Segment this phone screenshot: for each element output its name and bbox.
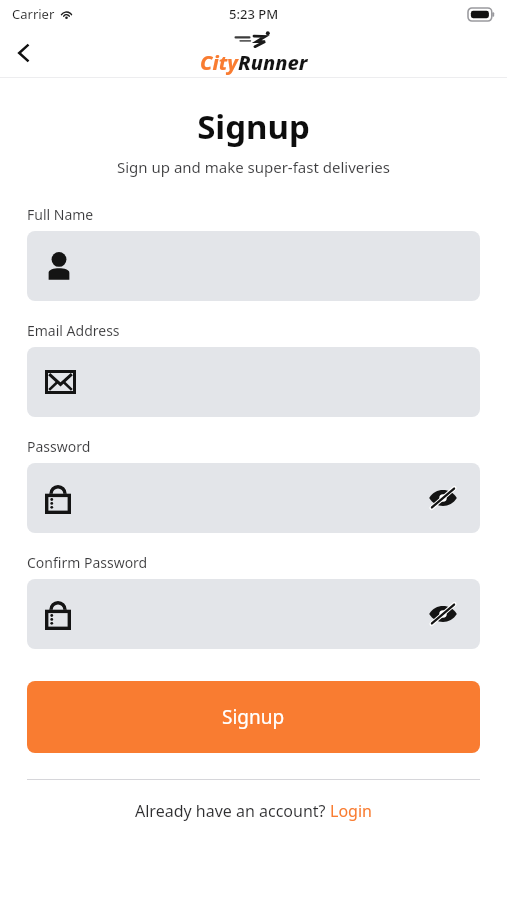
staticText: City xyxy=(200,49,238,76)
button[interactable]: Signup xyxy=(27,681,480,753)
button[interactable] xyxy=(27,347,480,417)
staticText: Already have an account? xyxy=(135,800,330,822)
button[interactable]: Show password xyxy=(424,595,462,633)
staticText: Email Address xyxy=(27,321,120,340)
staticText: Sign up and make super-fast deliveries xyxy=(117,157,390,177)
button[interactable]: Login xyxy=(330,800,372,822)
staticText: 5:23 PM xyxy=(229,5,279,23)
staticText: Password xyxy=(27,437,91,456)
staticText: Login xyxy=(330,800,372,822)
staticText: Runner xyxy=(238,49,308,76)
button[interactable]: Show password xyxy=(27,463,480,533)
staticText: Carrier xyxy=(12,5,55,23)
staticText: Signup xyxy=(197,104,310,149)
button[interactable]: Show password xyxy=(27,579,480,649)
button[interactable] xyxy=(27,231,480,301)
button[interactable]: Show password xyxy=(424,479,462,517)
button[interactable]: Back xyxy=(0,29,48,77)
staticText: Signup xyxy=(222,704,285,730)
staticText: Full Name xyxy=(27,205,94,224)
staticText: Confirm Password xyxy=(27,553,148,572)
